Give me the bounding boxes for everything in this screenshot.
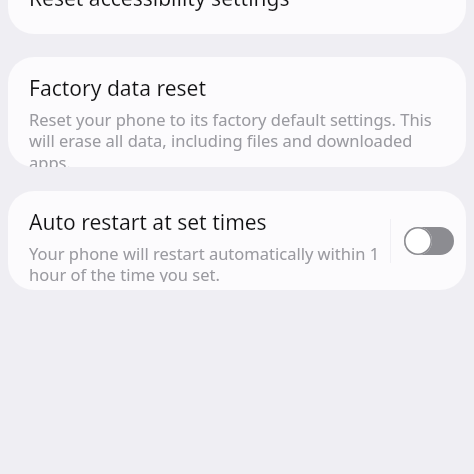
button[interactable]: Auto restart at set times toggle, off: [404, 227, 454, 255]
staticText: Reset accessibility settings: [29, 0, 290, 13]
staticText: Reset your phone to its factory default …: [29, 108, 450, 167]
staticText: Factory data reset: [29, 74, 206, 103]
button[interactable]: Auto restart at set times: [8, 191, 466, 290]
button[interactable]: Factory data reset: [8, 57, 466, 167]
staticText: Your phone will restart automatically wi…: [29, 242, 382, 282]
button[interactable]: Reset accessibility settings: [8, 0, 466, 34]
staticText: Auto restart at set times: [29, 208, 267, 237]
